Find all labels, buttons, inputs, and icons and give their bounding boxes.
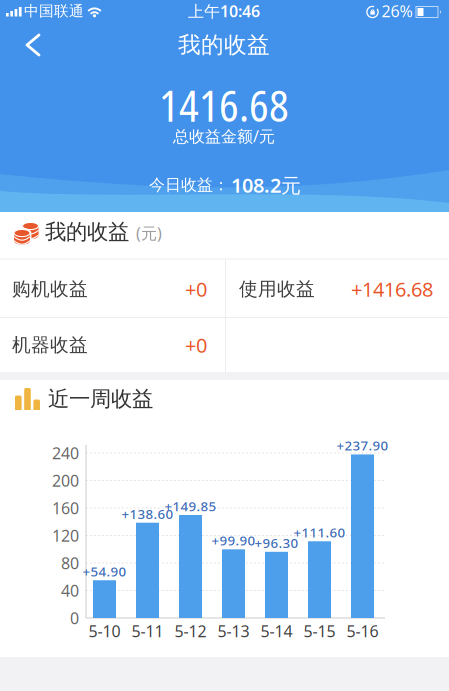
staticText: 5-13 <box>217 620 249 642</box>
staticText: 0 <box>70 607 79 629</box>
staticText: 近一周收益 <box>48 386 153 412</box>
staticText: 上午10:46 <box>188 0 260 22</box>
staticText: +138.60 <box>121 505 173 523</box>
staticText: 使用收益 <box>239 277 315 300</box>
staticText: +237.90 <box>336 437 388 454</box>
staticText: 120 <box>52 525 79 546</box>
staticText: 200 <box>52 470 79 491</box>
staticText: 5-14 <box>260 620 292 642</box>
staticText: 5-15 <box>303 620 335 642</box>
staticText: +149.85 <box>164 497 216 515</box>
staticText: 5-11 <box>131 620 163 642</box>
staticText: +99.90 <box>211 531 255 549</box>
staticText: 240 <box>52 442 79 464</box>
staticText: 5-10 <box>88 620 120 642</box>
staticText: 40 <box>61 580 79 601</box>
staticText: 5-12 <box>174 620 206 642</box>
staticText: 我的收益 <box>178 31 270 59</box>
staticText: 机器收益 <box>12 333 88 356</box>
button[interactable]: Back <box>12 25 52 65</box>
staticText: +96.30 <box>254 534 298 552</box>
staticText: 160 <box>52 497 79 519</box>
staticText: +1416.68 <box>351 276 433 302</box>
staticText: 总收益金额/元 <box>173 125 275 147</box>
staticText: +111.60 <box>293 523 345 541</box>
staticText: 今日收益： <box>149 175 229 195</box>
staticText: +54.90 <box>82 562 126 580</box>
staticText: (元) <box>136 222 162 244</box>
staticText: 购机收益 <box>12 277 88 300</box>
staticText: 108.2元 <box>231 172 301 198</box>
staticText: 80 <box>61 552 79 574</box>
staticText: 5-16 <box>346 620 378 642</box>
staticText: 中国联通 <box>24 2 84 20</box>
staticText: +0 <box>185 276 207 302</box>
staticText: 26% <box>381 0 412 22</box>
staticText: 1416.68 <box>159 75 289 134</box>
staticText: +0 <box>185 332 207 358</box>
staticText: 我的收益 <box>45 219 129 245</box>
